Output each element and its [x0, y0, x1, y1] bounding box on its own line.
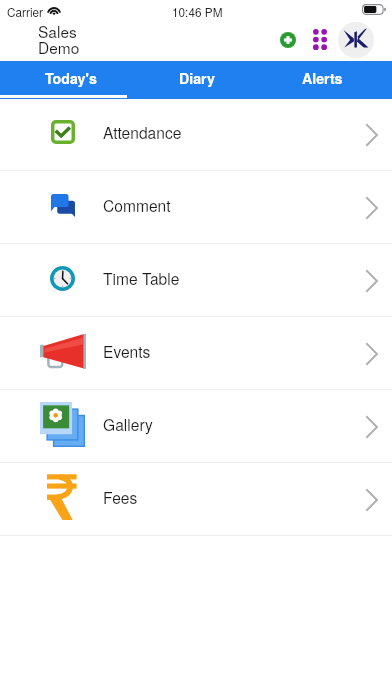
staticText: Comment — [103, 194, 171, 216]
button[interactable]: Diary — [135, 61, 259, 99]
button[interactable]: Events — [0, 317, 392, 390]
staticText: Gallery — [103, 413, 153, 435]
staticText: 10:46 PM — [172, 3, 223, 20]
button[interactable]: Profile — [338, 22, 374, 58]
staticText: Diary — [179, 68, 215, 88]
button[interactable]: Fees — [0, 463, 392, 536]
button[interactable]: Alerts — [260, 61, 384, 99]
staticText: Carrier — [7, 3, 44, 20]
staticText: Alerts — [302, 68, 343, 88]
button[interactable]: Time Table — [0, 244, 392, 317]
button[interactable]: Today's — [9, 61, 133, 99]
button[interactable]: Attendance — [0, 98, 392, 171]
staticText: Today's — [45, 68, 97, 88]
staticText: Time Table — [103, 267, 180, 289]
button[interactable]: Comment — [0, 171, 392, 244]
staticText: Attendance — [103, 121, 182, 143]
staticText: Fees — [103, 486, 138, 508]
staticText: Demo — [38, 36, 80, 58]
staticText: Events — [103, 340, 151, 362]
button[interactable]: Apps — [308, 27, 332, 51]
staticText: Sales — [38, 20, 77, 42]
button[interactable]: Gallery — [0, 390, 392, 463]
button[interactable]: Add — [276, 28, 300, 52]
